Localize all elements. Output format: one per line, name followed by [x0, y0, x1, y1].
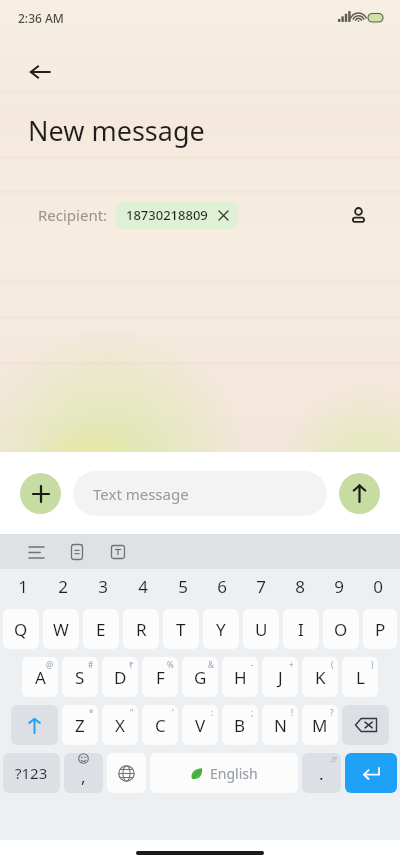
staticText: Q — [14, 618, 28, 641]
staticText: P — [375, 618, 386, 641]
button[interactable]: ?123 — [3, 753, 60, 793]
staticText: ?123 — [15, 763, 48, 783]
button[interactable] — [342, 705, 389, 745]
button[interactable]: B — [222, 705, 258, 745]
staticText: 3 — [98, 575, 108, 598]
staticText: * — [89, 707, 94, 718]
button[interactable]: U — [243, 609, 279, 649]
staticText: 7 — [256, 575, 266, 598]
button[interactable]: F — [142, 657, 178, 697]
staticText: 2:36 AM — [18, 10, 64, 26]
button[interactable]: 5 — [163, 569, 202, 603]
button[interactable]: Clipboard — [63, 538, 91, 566]
staticText: 8 — [295, 575, 305, 598]
staticText: 9 — [334, 575, 344, 598]
button[interactable]: Contacts — [340, 197, 376, 233]
staticText: B — [234, 714, 246, 737]
staticText: O — [334, 618, 348, 641]
staticText: 6 — [217, 575, 227, 598]
button[interactable]: H — [222, 657, 258, 697]
staticText: ) — [371, 659, 374, 670]
button[interactable]: O — [323, 609, 359, 649]
staticText: ' — [172, 707, 174, 718]
button[interactable]: 6 — [202, 569, 241, 603]
button[interactable]: Period — [302, 753, 341, 793]
staticText: G — [194, 666, 207, 689]
button[interactable]: 0 — [358, 569, 397, 603]
button[interactable]: 2 — [43, 569, 83, 603]
staticText: 0 — [373, 575, 383, 598]
staticText: Text message — [93, 484, 189, 504]
button[interactable]: Z — [62, 705, 98, 745]
button[interactable]: N — [262, 705, 298, 745]
button[interactable]: T — [163, 609, 199, 649]
staticText: U — [255, 618, 268, 641]
button[interactable]: G — [182, 657, 218, 697]
staticText: K — [315, 666, 326, 689]
staticText: C — [155, 714, 166, 737]
staticText: ! — [291, 707, 294, 718]
button[interactable]: D — [102, 657, 138, 697]
button[interactable] — [107, 753, 146, 793]
staticText: : — [211, 707, 214, 718]
staticText: , — [81, 765, 86, 788]
staticText: T — [176, 618, 186, 641]
staticText: L — [356, 666, 365, 689]
button[interactable]: E — [83, 609, 119, 649]
button[interactable]: C — [142, 705, 178, 745]
staticText: 18730218809 — [126, 206, 208, 224]
staticText: F — [156, 666, 165, 689]
staticText: N — [274, 714, 287, 737]
button[interactable]: M — [302, 705, 338, 745]
staticText: - — [251, 659, 254, 670]
button[interactable]: R — [123, 609, 159, 649]
button[interactable]: I — [283, 609, 319, 649]
button[interactable]: Text editing — [104, 538, 132, 566]
button[interactable]: S — [62, 657, 98, 697]
staticText: @ — [46, 659, 54, 670]
button[interactable]: Back — [18, 50, 62, 94]
button[interactable]: P — [363, 609, 397, 649]
button[interactable]: 7 — [241, 569, 280, 603]
staticText: A — [35, 666, 46, 689]
staticText: V — [195, 714, 206, 737]
button[interactable]: X — [102, 705, 138, 745]
button[interactable]: 4 — [123, 569, 163, 603]
button[interactable]: English — [150, 753, 298, 793]
button[interactable]: 9 — [319, 569, 358, 603]
button[interactable]: 1 — [3, 569, 43, 603]
staticText: X — [115, 714, 125, 737]
button[interactable]: 18730218809 — [116, 201, 238, 229]
button[interactable]: Emoji and comma — [64, 753, 103, 793]
button[interactable] — [11, 705, 58, 745]
button[interactable]: Q — [3, 609, 39, 649]
staticText: 1 — [18, 575, 28, 598]
button[interactable]: A — [22, 657, 58, 697]
button[interactable]: 8 — [280, 569, 319, 603]
button[interactable]: 3 — [83, 569, 123, 603]
button[interactable]: Menu — [22, 538, 50, 566]
button[interactable]: Add attachment — [20, 473, 61, 514]
button[interactable]: J — [262, 657, 298, 697]
staticText: Y — [216, 618, 226, 641]
button[interactable]: Y — [203, 609, 239, 649]
button[interactable]: Send — [339, 473, 380, 514]
button[interactable]: Enter — [345, 753, 397, 793]
staticText: + — [289, 659, 294, 670]
staticText: W — [53, 618, 69, 641]
staticText: English — [210, 764, 258, 783]
staticText: ₹ — [129, 659, 134, 670]
staticText: 5 — [178, 575, 188, 598]
button[interactable]: K — [302, 657, 338, 697]
button[interactable]: V — [182, 705, 218, 745]
staticText: ? — [330, 707, 334, 718]
staticText: M — [312, 714, 328, 737]
button[interactable]: W — [43, 609, 79, 649]
staticText: & — [208, 659, 214, 670]
staticText: ; — [251, 707, 254, 718]
staticText: % — [167, 659, 174, 670]
button[interactable]: Text message — [73, 471, 327, 516]
staticText: ( — [331, 659, 334, 670]
staticText: E — [96, 618, 106, 641]
button[interactable]: L — [342, 657, 378, 697]
